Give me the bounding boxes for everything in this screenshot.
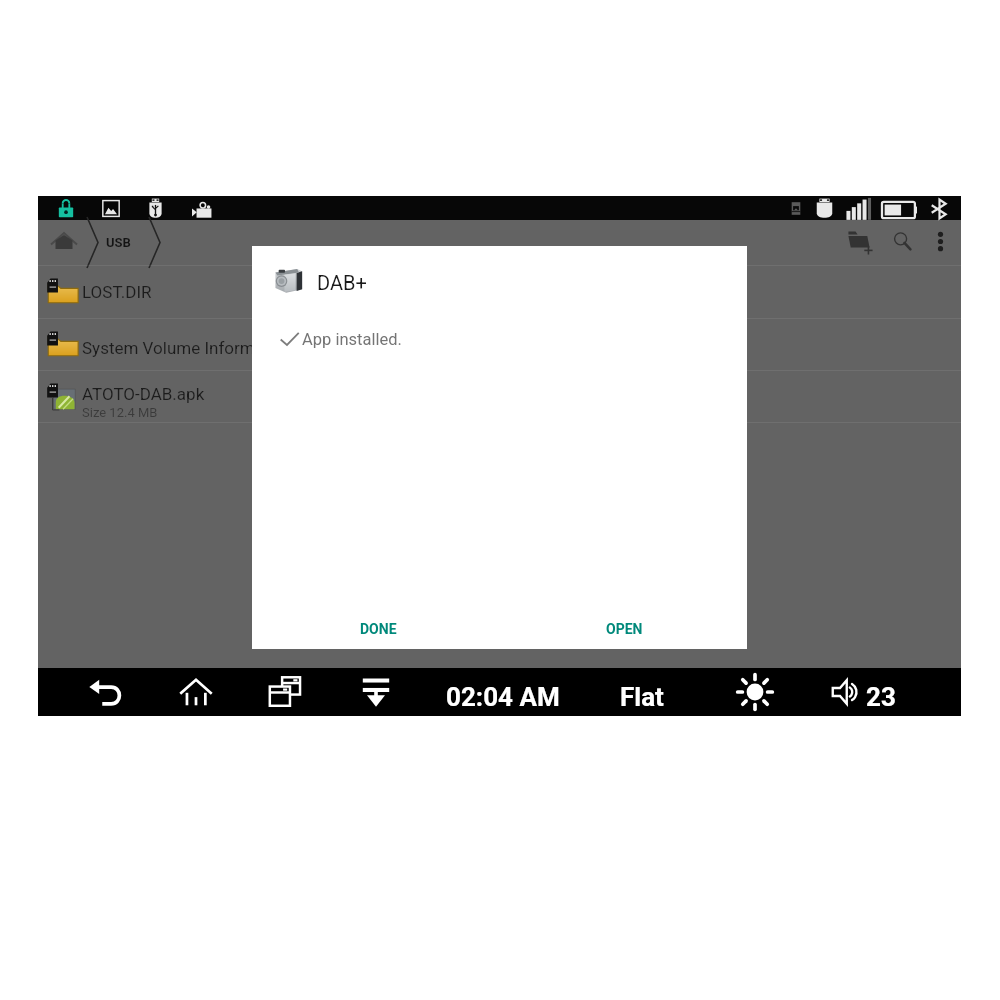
staticText: App installed. bbox=[302, 330, 402, 349]
button[interactable]: DONE bbox=[351, 610, 406, 648]
staticText: 23 bbox=[866, 682, 896, 712]
staticText: OPEN bbox=[606, 621, 643, 637]
staticText: System Volume Information bbox=[82, 338, 293, 358]
staticText: 02:04 AM bbox=[446, 682, 560, 712]
button[interactable]: ATOTO-DAB.apk bbox=[38, 371, 961, 423]
staticText: Size 12.4 MB bbox=[82, 405, 158, 420]
button[interactable]: System Volume Information bbox=[38, 319, 961, 371]
staticText: DAB+ bbox=[317, 271, 367, 294]
button[interactable]: OPEN bbox=[597, 610, 652, 648]
button[interactable]: LOST.DIR bbox=[38, 266, 961, 319]
staticText: USB bbox=[106, 235, 131, 250]
button[interactable]: USB bbox=[102, 229, 135, 256]
staticText: DONE bbox=[360, 621, 397, 637]
staticText: ATOTO-DAB.apk bbox=[82, 384, 205, 404]
staticText: Flat bbox=[620, 682, 664, 712]
staticText: LOST.DIR bbox=[82, 282, 152, 302]
